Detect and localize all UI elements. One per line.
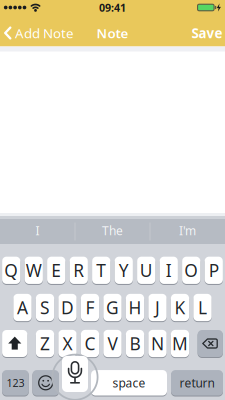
button[interactable]: 123 [2, 370, 29, 396]
staticText: Note [96, 24, 128, 42]
staticText: X [62, 332, 72, 355]
button[interactable]: Y [115, 256, 133, 284]
staticText: L [198, 296, 207, 319]
staticText: space [112, 375, 145, 391]
button[interactable]: E [47, 256, 65, 284]
staticText: T [96, 259, 106, 282]
staticText: R [73, 259, 84, 282]
staticText: O [184, 259, 198, 282]
staticText: K [174, 296, 185, 319]
staticText: A [17, 296, 28, 319]
button[interactable]: M [171, 329, 189, 358]
button[interactable]: Q [2, 256, 20, 284]
staticText: I [166, 259, 172, 282]
button[interactable]: B [126, 329, 144, 358]
staticText: M [172, 332, 188, 355]
staticText: Save [191, 24, 222, 42]
staticText: 123 [6, 376, 24, 390]
staticText: U [140, 259, 153, 282]
staticText: G [106, 296, 119, 319]
staticText: V [107, 332, 117, 355]
button[interactable]: G [103, 293, 122, 322]
staticText: I [35, 222, 39, 238]
button[interactable]: P [205, 256, 223, 284]
button[interactable]: J [148, 293, 167, 322]
staticText: P [209, 259, 219, 282]
button[interactable]: Dictate [62, 356, 88, 392]
staticText: S [40, 296, 50, 319]
button[interactable]: F [81, 293, 99, 322]
staticText: I'm [179, 222, 196, 238]
staticText: Q [4, 259, 18, 282]
staticText: E [51, 259, 61, 282]
staticText: F [85, 296, 94, 319]
staticText: J [155, 296, 160, 319]
button[interactable]: The [76, 218, 149, 243]
staticText: D [61, 296, 74, 319]
button[interactable]: X [58, 329, 77, 358]
staticText: W [26, 259, 42, 282]
button[interactable]: I [160, 256, 178, 284]
button[interactable]: Shift [2, 329, 27, 357]
button[interactable]: R [70, 256, 88, 284]
staticText: N [151, 332, 164, 355]
button[interactable]: Emoji [32, 370, 59, 396]
button[interactable]: Add Note [4, 24, 84, 42]
button[interactable]: C [81, 329, 99, 358]
button[interactable]: H [126, 293, 144, 322]
staticText: return [179, 375, 214, 391]
button[interactable]: K [171, 293, 189, 322]
button[interactable]: Delete [198, 329, 223, 357]
button[interactable]: V [103, 329, 122, 358]
button[interactable]: Z [36, 329, 54, 358]
button[interactable]: A [13, 293, 32, 322]
staticText: Y [119, 259, 129, 282]
staticText: Add Note [15, 24, 74, 42]
button[interactable]: Save [162, 24, 222, 42]
button[interactable]: D [58, 293, 77, 322]
button[interactable]: space [91, 370, 167, 396]
button[interactable]: L [193, 293, 212, 322]
staticText: H [128, 296, 141, 319]
staticText: Z [40, 332, 50, 355]
button[interactable]: O [182, 256, 200, 284]
button[interactable]: U [137, 256, 155, 284]
staticText: The [102, 222, 123, 238]
staticText: B [129, 332, 140, 355]
button[interactable]: N [148, 329, 167, 358]
staticText: 09:41 [99, 0, 126, 15]
staticText: C [84, 332, 95, 355]
button[interactable]: I [1, 218, 74, 243]
button[interactable]: return [171, 370, 223, 396]
button[interactable]: I'm [151, 218, 224, 243]
button[interactable]: W [25, 256, 43, 284]
button[interactable]: T [92, 256, 110, 284]
button[interactable]: S [36, 293, 54, 322]
